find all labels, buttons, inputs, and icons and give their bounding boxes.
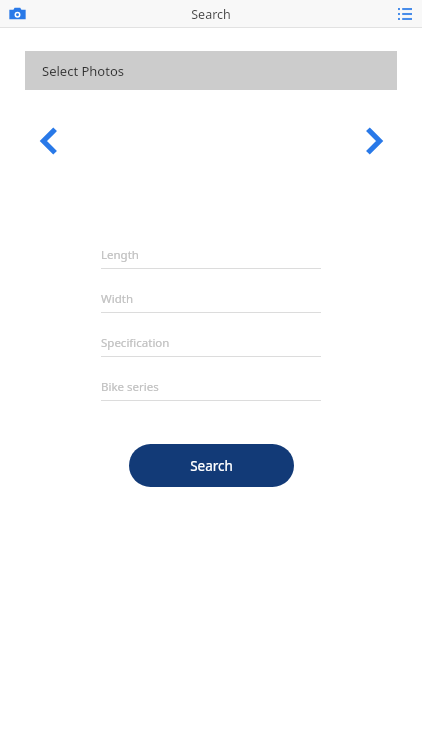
button[interactable]: Width	[101, 281, 321, 313]
staticText: Length	[101, 247, 139, 263]
button[interactable]: Bike series	[101, 369, 321, 401]
staticText: Specification	[101, 335, 170, 351]
staticText: Width	[101, 291, 133, 307]
button[interactable]: Length	[101, 237, 321, 269]
button[interactable]: List	[392, 3, 418, 25]
button[interactable]: Camera	[4, 3, 30, 25]
staticText: Bike series	[101, 379, 159, 395]
staticText: Search	[190, 457, 233, 475]
button[interactable]: Select Photos	[25, 51, 397, 90]
staticText: Search	[191, 6, 231, 23]
button[interactable]: Previous	[31, 124, 65, 158]
button[interactable]: Search	[129, 444, 294, 487]
staticText: Select Photos	[42, 62, 125, 80]
button[interactable]: Specification	[101, 325, 321, 357]
button[interactable]: Next	[357, 124, 391, 158]
